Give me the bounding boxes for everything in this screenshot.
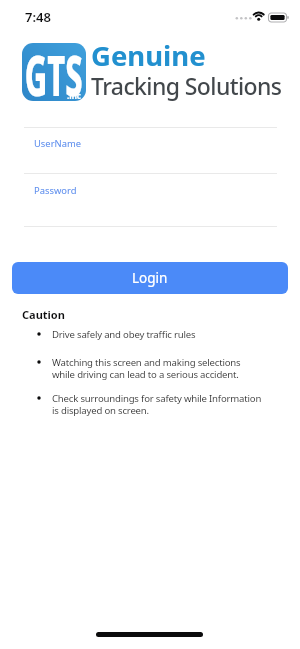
staticText: Check surroundings for safety while Info…: [52, 392, 262, 417]
staticText: Genuine: [91, 37, 206, 74]
staticText: Tracking Solutions: [91, 70, 282, 101]
staticText: 7:48: [25, 8, 51, 26]
staticText: GTS: [25, 36, 83, 106]
staticText: Drive safely and obey traffic rules: [52, 328, 196, 341]
staticText: Watching this screen and making selectio…: [52, 356, 241, 381]
staticText: Login: [132, 269, 168, 287]
staticText: Caution: [22, 307, 65, 322]
staticText: .inc: [67, 90, 81, 101]
staticText: Password: [34, 184, 77, 197]
button[interactable]: UserName: [24, 128, 277, 173]
button[interactable]: Password: [24, 174, 277, 226]
staticText: UserName: [34, 137, 82, 150]
button[interactable]: Login: [12, 262, 288, 294]
